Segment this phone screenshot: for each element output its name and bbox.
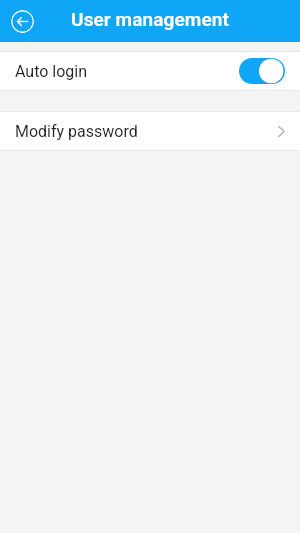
staticText: Modify password	[15, 122, 138, 141]
button[interactable]: Back	[11, 10, 34, 33]
button[interactable]: Modify password	[0, 112, 300, 150]
staticText: Auto login	[15, 62, 88, 81]
button[interactable]: Auto login, on	[239, 58, 285, 84]
button[interactable]: Auto login	[0, 52, 300, 90]
staticText: User management	[0, 8, 300, 30]
